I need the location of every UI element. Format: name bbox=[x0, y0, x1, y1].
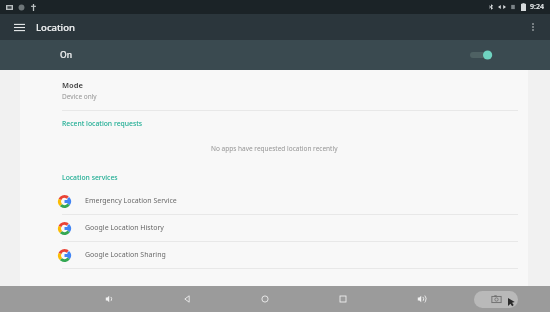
button[interactable]: Screenshot bbox=[474, 291, 518, 308]
button[interactable]: Mode bbox=[20, 78, 528, 105]
staticText: Google Location Sharing bbox=[85, 250, 166, 260]
staticText: 9:24 bbox=[530, 2, 544, 12]
button[interactable]: Back bbox=[148, 286, 226, 312]
button[interactable]: Recent apps bbox=[304, 286, 382, 312]
staticText: Google Location History bbox=[85, 223, 164, 233]
button[interactable]: Location toggle, on bbox=[470, 48, 492, 62]
button[interactable]: Navigation menu bbox=[10, 18, 28, 36]
button[interactable]: On bbox=[0, 40, 550, 70]
button[interactable]: Home bbox=[226, 286, 304, 312]
staticText: Emergency Location Service bbox=[85, 196, 177, 206]
button[interactable]: Emergency Location Service bbox=[20, 188, 528, 214]
staticText: Location services bbox=[62, 173, 118, 182]
button[interactable]: Google Location History bbox=[20, 215, 528, 241]
staticText: Recent location requests bbox=[62, 119, 143, 128]
staticText: Mode bbox=[62, 80, 83, 90]
button[interactable]: More options bbox=[524, 18, 542, 36]
staticText: Device only bbox=[62, 92, 97, 101]
button[interactable]: Volume up bbox=[382, 286, 460, 312]
button[interactable]: Volume down bbox=[70, 286, 148, 312]
staticText: Location bbox=[36, 21, 75, 34]
button[interactable]: Google Location Sharing bbox=[20, 242, 528, 268]
staticText: No apps have requested location recently bbox=[211, 144, 338, 153]
staticText: On bbox=[60, 49, 72, 61]
